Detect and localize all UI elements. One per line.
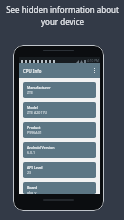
staticText: your device — [41, 16, 84, 27]
staticText: See hidden information about — [6, 4, 119, 15]
staticText: CPU Info — [23, 68, 42, 74]
staticText: ZTE — [27, 90, 34, 95]
staticText: 4:10 PM — [87, 59, 99, 63]
staticText: Manufacturer — [27, 85, 51, 90]
staticText: Android Version — [27, 145, 55, 150]
button[interactable]: Manufacturer — [23, 82, 96, 98]
staticText: API Level — [27, 165, 43, 170]
button[interactable]: Android Version — [23, 142, 96, 158]
staticText: Product — [27, 125, 41, 130]
staticText: 6.0.1 — [27, 150, 36, 155]
button[interactable]: More options — [92, 66, 97, 75]
staticText: aka_v — [27, 190, 37, 194]
button[interactable]: Product — [23, 122, 96, 138]
staticText: P996A01 — [27, 130, 42, 135]
button[interactable]: Model — [23, 102, 96, 118]
staticText: 23 — [27, 170, 32, 175]
button[interactable]: API Level — [23, 162, 96, 178]
staticText: Model — [27, 105, 38, 110]
staticText: ZTE A2017U — [27, 110, 48, 115]
button[interactable]: Board — [23, 182, 96, 194]
staticText: Board — [27, 185, 38, 190]
